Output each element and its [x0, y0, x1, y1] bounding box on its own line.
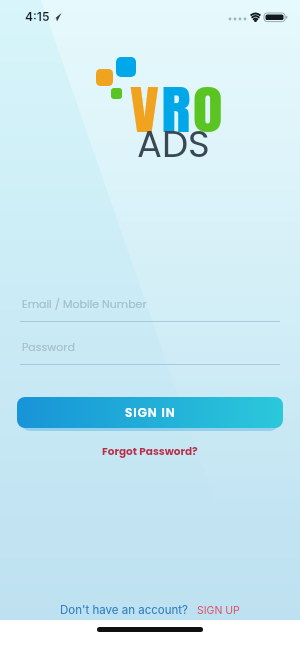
button[interactable]: Email / Mobile Number [0, 294, 300, 324]
button[interactable]: Don't have an account? [60, 603, 188, 617]
staticText: Password [22, 339, 75, 354]
button[interactable]: SIGN IN [17, 397, 283, 428]
staticText: SIGN IN [125, 404, 176, 421]
staticText: VRO [130, 71, 226, 149]
button[interactable]: Forgot Password? [102, 444, 198, 459]
button[interactable]: Password [0, 337, 300, 367]
staticText: ADS [137, 118, 210, 170]
button[interactable]: SIGN UP [197, 604, 240, 617]
staticText: Email / Mobile Number [22, 296, 147, 311]
staticText: 4:15 [25, 9, 50, 24]
